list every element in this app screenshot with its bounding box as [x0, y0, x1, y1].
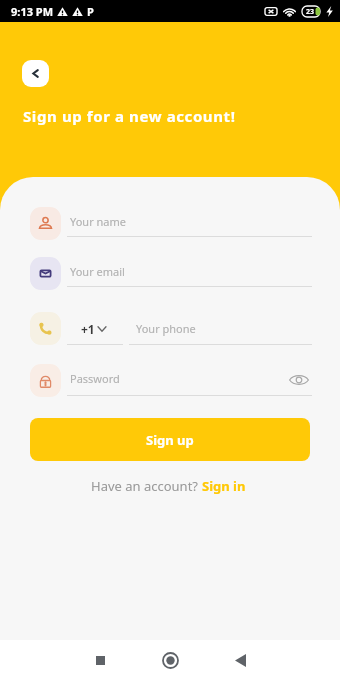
button[interactable]: Your phone: [129, 321, 312, 345]
button[interactable]: Back: [214, 640, 266, 680]
staticText: Your phone: [136, 321, 196, 336]
staticText: Password: [70, 371, 120, 386]
button[interactable]: Your email: [67, 264, 312, 287]
button[interactable]: Sign in: [202, 477, 246, 495]
staticText: 9:13 PM: [11, 4, 54, 19]
button[interactable]: Recents: [74, 640, 126, 680]
button[interactable]: Back: [22, 60, 49, 87]
staticText: Your name: [70, 214, 126, 229]
button[interactable]: Show password: [288, 372, 310, 387]
staticText: Have an account?: [91, 477, 202, 495]
staticText: +1: [81, 321, 95, 337]
staticText: Sign up: [146, 431, 194, 449]
staticText: Your email: [70, 264, 125, 279]
button[interactable]: Sign up: [30, 418, 310, 461]
button[interactable]: Your name: [67, 214, 312, 237]
button[interactable]: +1: [67, 321, 123, 345]
staticText: 23: [306, 7, 315, 17]
staticText: Sign in: [202, 477, 246, 495]
button[interactable]: Home: [144, 640, 196, 680]
staticText: P: [87, 4, 94, 19]
button[interactable]: Password: [67, 371, 312, 396]
staticText: Sign up for a new account!: [23, 106, 236, 126]
